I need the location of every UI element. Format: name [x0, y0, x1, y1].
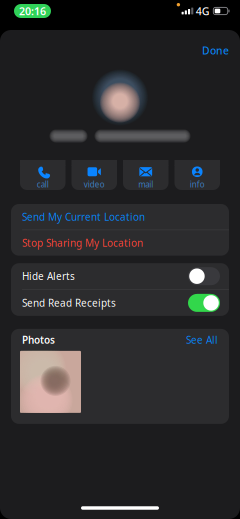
staticText: Done	[202, 44, 229, 57]
staticText: mail	[138, 179, 153, 190]
button[interactable]: video	[71, 160, 117, 190]
button[interactable]: mail	[123, 160, 168, 190]
button[interactable]: See All	[186, 333, 218, 347]
button[interactable]: Hide Alerts	[11, 263, 229, 289]
button[interactable]: Stop Sharing My Location	[11, 230, 229, 256]
staticText: 4G	[196, 4, 210, 18]
staticText: Hide Alerts	[22, 270, 75, 283]
staticText: call	[37, 179, 49, 190]
staticText: video	[84, 179, 105, 190]
staticText: Send My Current Location	[22, 210, 145, 223]
staticText: See All	[186, 333, 218, 347]
button[interactable]: call	[20, 160, 65, 190]
staticText: Send Read Receipts	[22, 296, 116, 310]
button[interactable]: Send My Current Location	[11, 204, 229, 229]
staticText: 20:16	[19, 4, 46, 18]
staticText: Stop Sharing My Location	[22, 236, 143, 250]
button[interactable]: Done	[191, 35, 240, 60]
staticText: info	[190, 179, 205, 190]
staticText: Photos	[22, 333, 55, 347]
button[interactable]: Send Read Receipts	[11, 290, 229, 316]
button[interactable]: info	[174, 160, 220, 190]
